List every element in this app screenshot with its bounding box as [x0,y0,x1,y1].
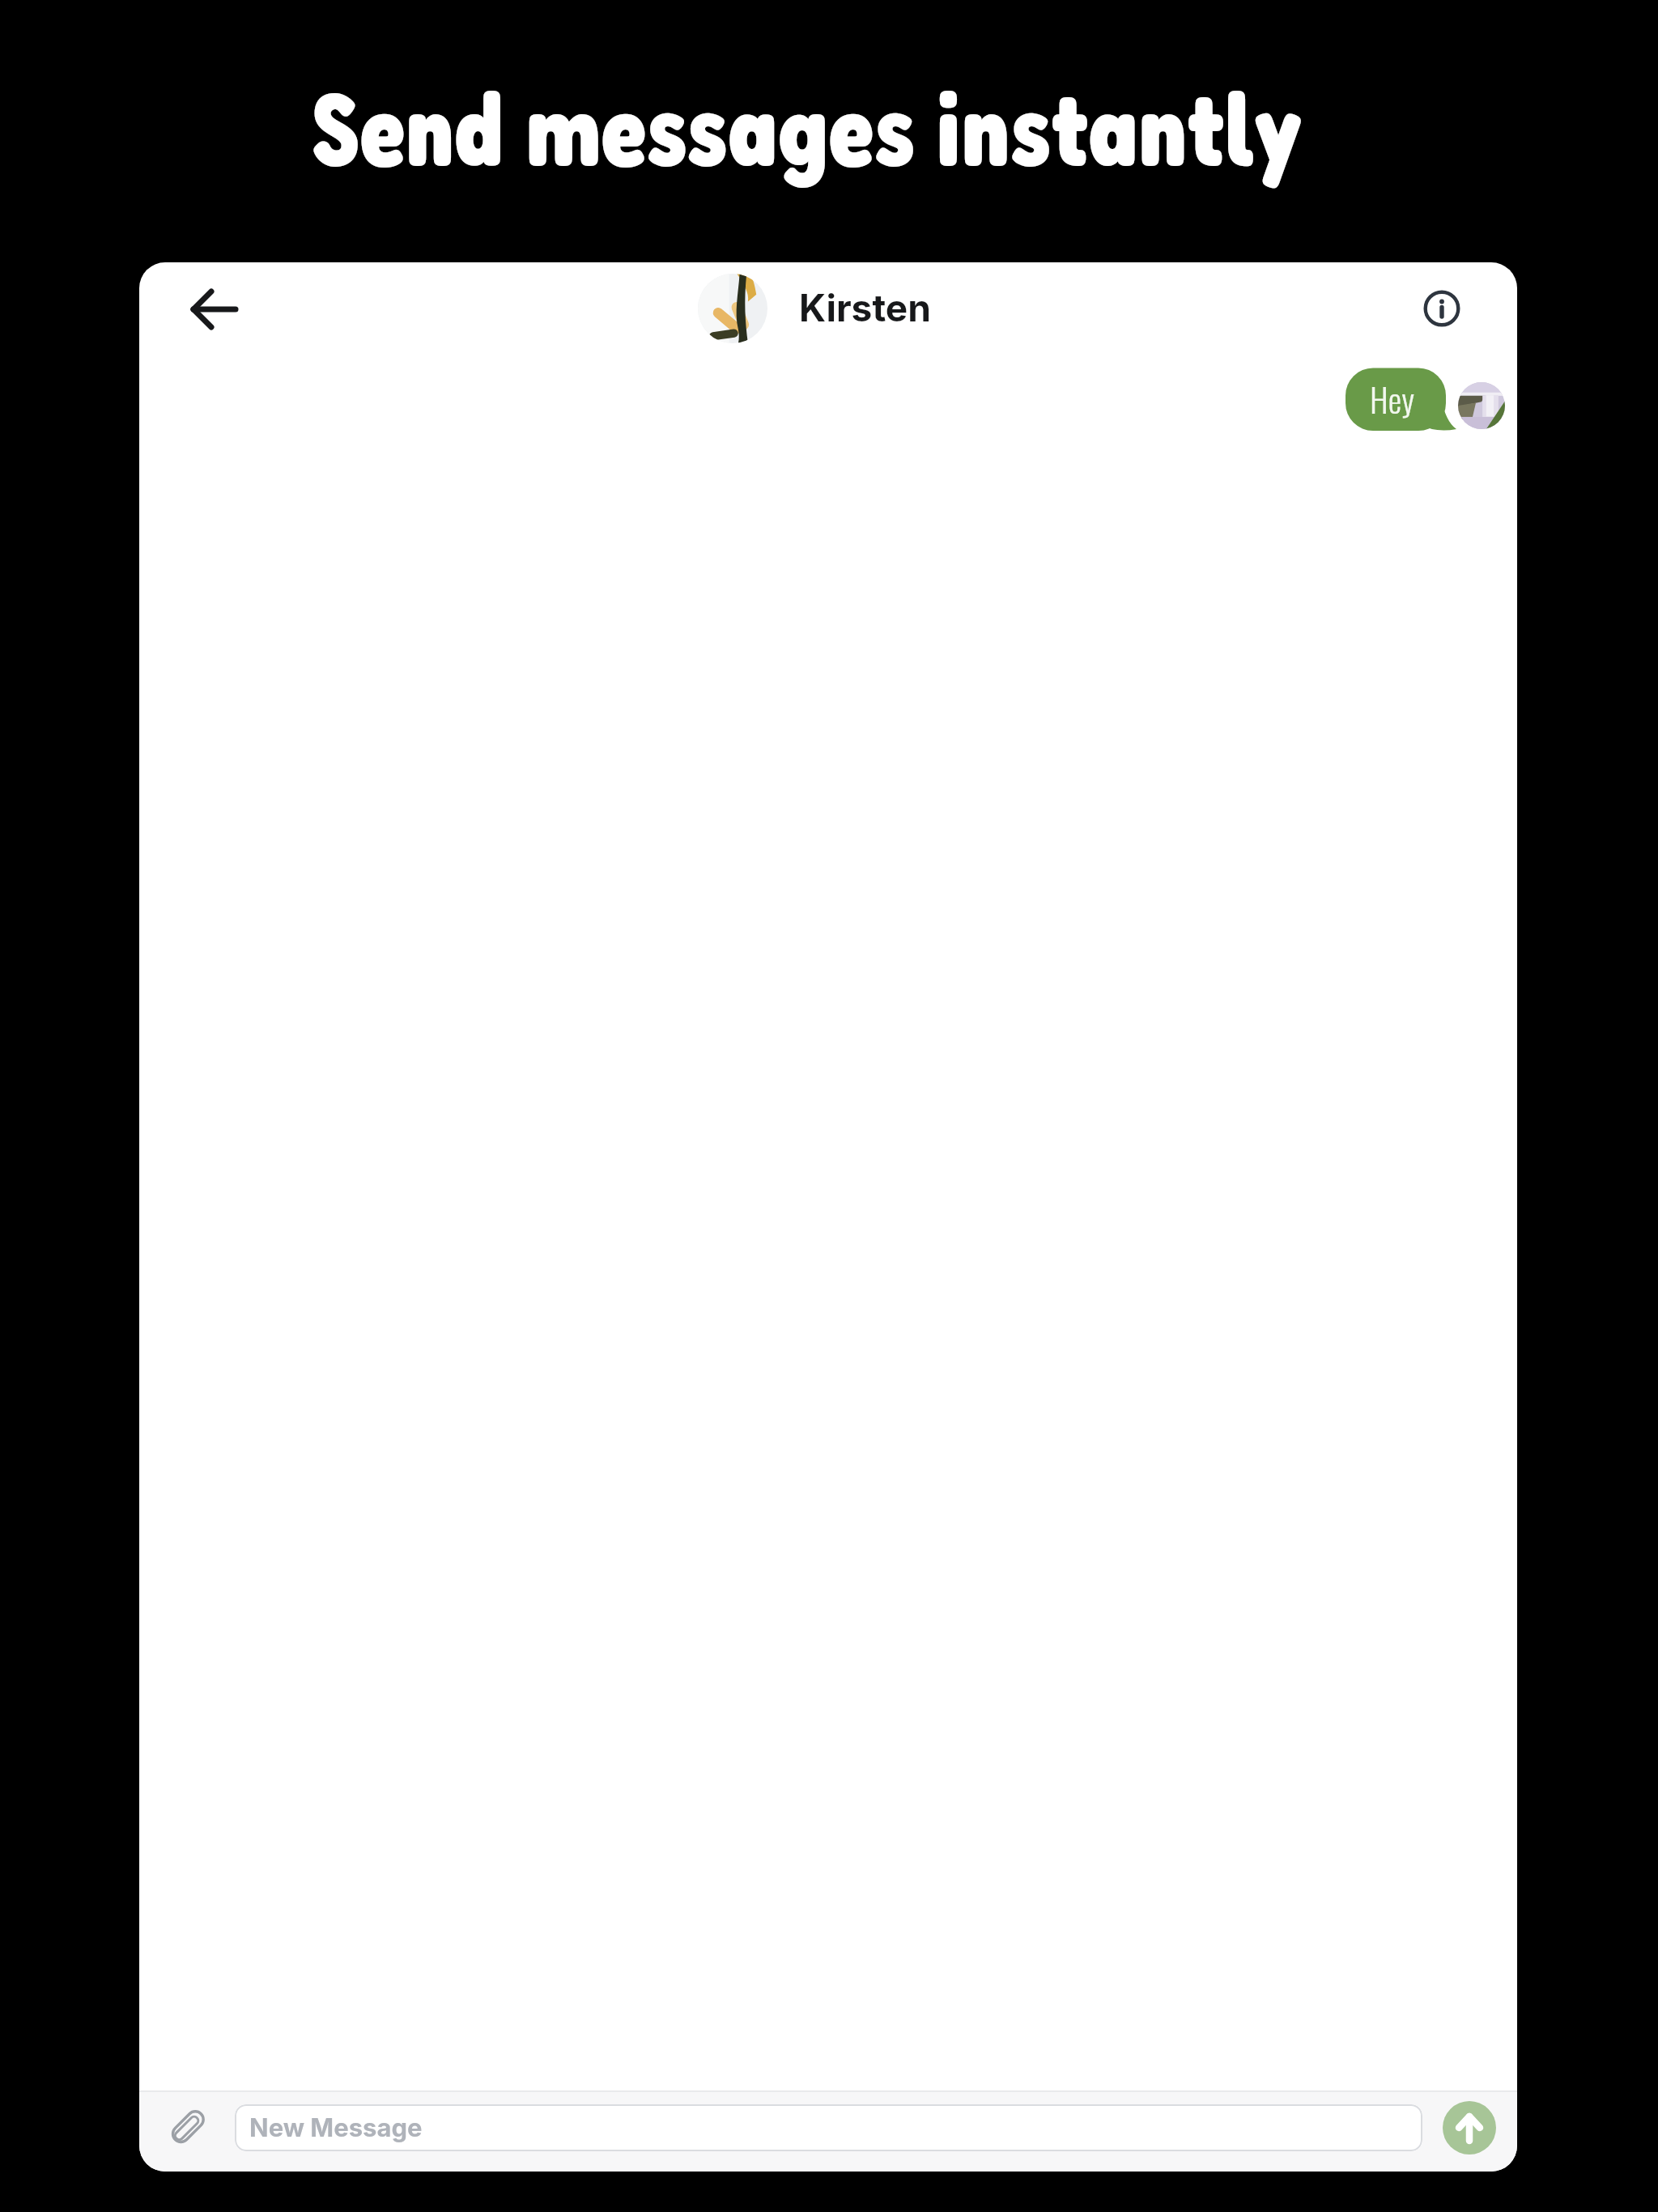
staticText: Kirsten [799,285,931,330]
button[interactable]: Kirsten [698,274,965,343]
button[interactable] [1416,283,1468,334]
staticText: Send messages instantly [312,65,1303,189]
button[interactable] [187,282,242,337]
staticText: Hey [1370,373,1414,423]
button[interactable] [1443,2101,1496,2155]
button[interactable]: New Message [235,2104,1422,2151]
button[interactable] [162,2101,214,2153]
staticText: New Message [249,2112,423,2143]
